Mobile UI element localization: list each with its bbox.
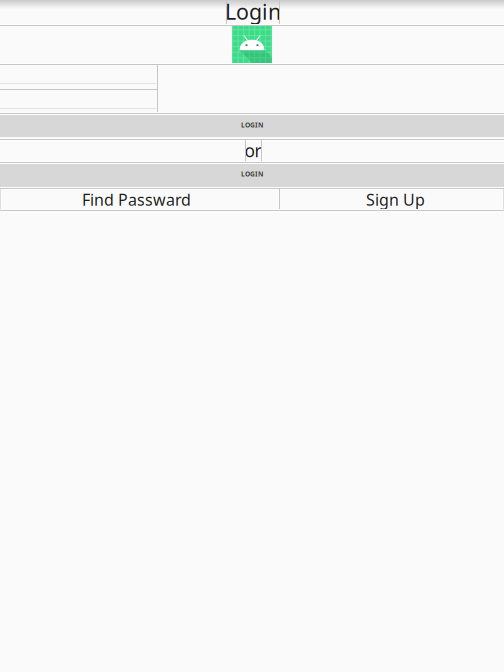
staticText: Sign Up: [366, 189, 425, 210]
staticText: or: [244, 139, 261, 162]
button[interactable]: LOGIN: [0, 0, 504, 23]
button[interactable]: Sign Up: [0, 0, 227, 21]
staticText: LOGIN: [241, 121, 263, 129]
staticText: Find Passward: [82, 189, 191, 210]
button[interactable]: LOGIN: [0, 0, 504, 22]
staticText: LOGIN: [241, 170, 263, 178]
button[interactable]: Find Passward: [0, 0, 279, 21]
button[interactable]: Login: [0, 0, 54, 25]
staticText: Login: [225, 0, 281, 26]
